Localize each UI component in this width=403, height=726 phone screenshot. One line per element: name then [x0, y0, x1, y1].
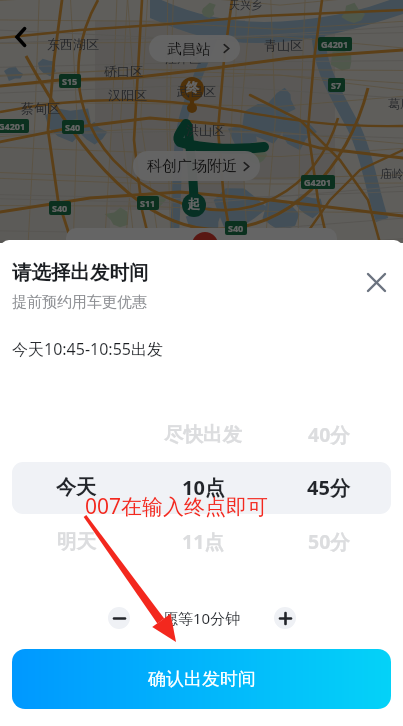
staticText: 确认出发时间: [148, 668, 256, 691]
button[interactable]: 今天: [0, 461, 403, 513]
staticText: 40分: [308, 421, 350, 448]
staticText: 今天: [56, 475, 96, 500]
staticText: 终: [186, 79, 199, 95]
staticText: 起: [188, 196, 200, 211]
staticText: 今天10:45-10:55出发: [12, 338, 163, 360]
button[interactable]: 确认出发时间: [12, 649, 391, 709]
staticText: 天兴乡: [229, 0, 262, 12]
staticText: 硚口区: [104, 63, 143, 79]
staticText: 汉阳区: [108, 87, 147, 103]
staticText: 江岸区: [165, 51, 201, 66]
button[interactable]: Close: [359, 265, 393, 299]
staticText: 45分: [307, 474, 350, 501]
staticText: 50分: [308, 528, 350, 555]
staticText: 尽快出发: [164, 422, 242, 447]
button[interactable]: 尽快出发: [0, 408, 403, 460]
staticText: 武昌区: [177, 83, 216, 99]
staticText: 10点: [182, 474, 225, 501]
staticText: 科创广场附近: [147, 157, 237, 176]
staticText: 蔡甸区: [21, 100, 60, 116]
staticText: S40: [65, 121, 81, 133]
staticText: S15: [62, 75, 78, 87]
staticText: 请选择出发时间: [12, 260, 149, 285]
staticText: 007在输入终点即可: [85, 492, 269, 521]
button[interactable]: 明天: [0, 515, 403, 567]
staticText: 武昌站: [167, 40, 211, 58]
staticText: G4201: [321, 38, 349, 50]
button[interactable]: Decrease wait time: [108, 607, 130, 629]
button[interactable]: Back: [3, 19, 39, 55]
button[interactable]: 武昌站: [149, 35, 240, 62]
button[interactable]: 科创广场附近: [133, 151, 260, 181]
staticText: G4201: [304, 176, 332, 188]
staticText: 11点: [182, 528, 224, 555]
staticText: S11: [140, 197, 156, 209]
staticText: 庙岭: [380, 166, 403, 181]
staticText: 葛店: [388, 96, 403, 111]
staticText: 青山区: [264, 37, 303, 53]
staticText: S40: [52, 202, 68, 214]
button[interactable]: Increase wait time: [274, 607, 296, 629]
staticText: S7: [331, 79, 342, 91]
staticText: 东西湖区: [47, 36, 99, 52]
staticText: 明天: [57, 529, 96, 554]
staticText: G4201: [0, 120, 26, 132]
staticText: 提前预约用车更优惠: [12, 293, 147, 312]
staticText: 愿等10分钟: [163, 608, 241, 628]
staticText: 洪山区: [186, 122, 225, 138]
staticText: S40: [228, 222, 244, 234]
